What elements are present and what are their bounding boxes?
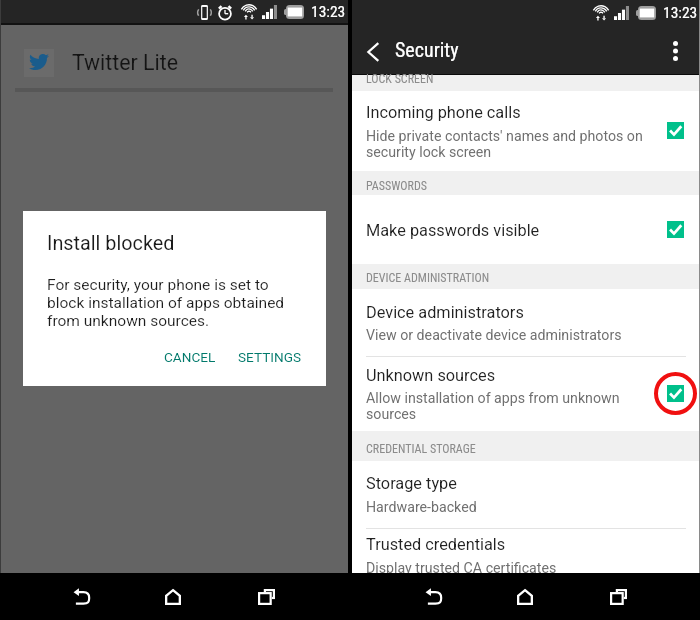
button[interactable]: More options [655, 31, 695, 71]
button[interactable]: Home [150, 585, 195, 609]
button[interactable]: Device administrators [352, 289, 700, 356]
button[interactable]: Incoming phone calls [352, 91, 700, 171]
button[interactable]: Back [59, 585, 104, 609]
staticText: View or deactivate device administrators [366, 327, 622, 343]
staticText: Twitter Lite [72, 50, 178, 75]
button[interactable]: Trusted credentials [352, 529, 700, 579]
button[interactable]: Back [411, 585, 456, 609]
staticText: 13:23 [311, 3, 346, 21]
staticText: Allow installation of apps from unknown … [366, 390, 620, 422]
button[interactable]: SETTINGS [236, 346, 303, 368]
staticText: Install blocked [47, 232, 175, 255]
staticText: Unknown sources [366, 366, 496, 385]
staticText: For security, your phone is set to block… [47, 275, 285, 329]
staticText: Hide private contacts' names and photos … [366, 128, 643, 160]
button[interactable]: Back [353, 32, 393, 72]
staticText: Hardware-backed [366, 499, 477, 515]
button[interactable]: Unknown sources [352, 357, 700, 431]
staticText: Security [395, 38, 459, 61]
button[interactable]: Make passwords visible [352, 195, 700, 264]
staticText: Make passwords visible [366, 221, 540, 240]
staticText: Display trusted CA certificates [366, 560, 557, 576]
staticText: Storage type [366, 474, 457, 493]
staticText: PASSWORDS [366, 179, 428, 193]
button[interactable]: Home [502, 585, 547, 609]
staticText: Incoming phone calls [366, 103, 521, 122]
staticText: SETTINGS [238, 349, 301, 365]
staticText: DEVICE ADMINISTRATION [366, 271, 490, 285]
staticText: CANCEL [164, 349, 216, 365]
button[interactable]: Recent apps [596, 585, 641, 609]
staticText: Device administrators [366, 303, 524, 322]
staticText: LOCK SCREEN [366, 72, 434, 86]
staticText: 13:23 [663, 4, 698, 22]
staticText: CREDENTIAL STORAGE [366, 442, 476, 456]
staticText: Trusted credentials [366, 535, 506, 554]
button[interactable]: Storage type [352, 461, 700, 528]
button[interactable]: Recent apps [244, 585, 289, 609]
button[interactable]: CANCEL [162, 346, 218, 368]
